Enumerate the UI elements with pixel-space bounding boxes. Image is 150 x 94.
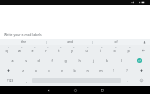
staticText: z — [22, 68, 24, 73]
button[interactable]: Recents — [89, 86, 116, 94]
staticText: p — [127, 48, 130, 53]
button[interactable]: of — [93, 39, 138, 45]
button[interactable]: g — [58, 55, 72, 65]
staticText: r — [45, 48, 47, 53]
button[interactable]: x — [29, 65, 42, 75]
button[interactable]: Emoji — [133, 75, 150, 86]
button[interactable]: Back — [35, 86, 62, 94]
staticText: i — [100, 48, 101, 53]
staticText: m — [99, 68, 103, 73]
staticText: . — [127, 78, 128, 83]
button[interactable]: 4 — [39, 45, 52, 55]
staticText: 6 — [73, 45, 75, 48]
staticText: e — [31, 48, 34, 53]
staticText: q — [5, 48, 8, 53]
staticText: of — [114, 40, 118, 44]
button[interactable]: the — [0, 39, 46, 45]
button[interactable]: m — [94, 65, 107, 75]
staticText: 9 — [115, 45, 117, 48]
staticText: a — [11, 58, 14, 63]
button[interactable]: Backspace — [135, 45, 150, 55]
button[interactable]: 7 — [79, 45, 93, 55]
button[interactable]: z — [16, 65, 29, 75]
staticText: 0 — [129, 45, 131, 48]
button[interactable]: Home — [62, 86, 89, 94]
button[interactable]: k — [100, 55, 114, 65]
staticText: t — [58, 48, 60, 53]
staticText: y — [71, 48, 73, 53]
button[interactable]: 2 — [13, 45, 26, 55]
button[interactable]: h — [72, 55, 86, 65]
staticText: b — [73, 68, 76, 73]
staticText: x — [35, 68, 37, 73]
staticText: n — [86, 68, 89, 73]
button[interactable]: Voice input — [138, 39, 150, 45]
staticText: 5 — [60, 45, 62, 48]
staticText: w — [18, 48, 21, 53]
staticText: h — [78, 58, 81, 63]
button[interactable]: and — [47, 39, 92, 45]
staticText: Write your e-mail labels — [4, 32, 42, 37]
button[interactable]: 6 — [65, 45, 79, 55]
staticText: 2 — [21, 45, 23, 48]
staticText: k — [106, 58, 108, 63]
button[interactable]: 1 — [0, 45, 13, 55]
button[interactable]: 3 — [26, 45, 39, 55]
button[interactable]: 8 — [93, 45, 107, 55]
staticText: 7 — [87, 45, 89, 48]
staticText: s — [25, 58, 27, 63]
button[interactable]: a — [6, 55, 19, 65]
button[interactable]: j — [86, 55, 100, 65]
button[interactable]: ?123 — [0, 75, 20, 86]
staticText: u — [85, 48, 88, 53]
staticText: 8 — [101, 45, 103, 48]
staticText: v — [61, 68, 63, 73]
button[interactable]: 9 — [107, 45, 121, 55]
staticText: l — [121, 58, 122, 63]
staticText: , — [26, 78, 27, 83]
button[interactable]: Shift — [0, 65, 16, 75]
staticText: 3 — [34, 45, 36, 48]
button[interactable]: n — [81, 65, 94, 75]
staticText: d — [37, 58, 40, 63]
staticText: g — [64, 58, 67, 63]
button[interactable]: 5 — [52, 45, 65, 55]
button[interactable]: d — [32, 55, 45, 65]
button[interactable]: v — [55, 65, 68, 75]
staticText: and — [67, 40, 73, 44]
button[interactable]: s — [19, 55, 32, 65]
staticText: ! — [113, 68, 114, 73]
button[interactable]: Enter — [128, 55, 150, 65]
button[interactable]: b — [68, 65, 81, 75]
staticText: j — [93, 58, 94, 63]
staticText: the — [21, 40, 26, 44]
button[interactable]: Shift — [133, 65, 150, 75]
button[interactable]: f — [45, 55, 58, 65]
staticText: c — [48, 68, 50, 73]
button[interactable]: l — [114, 55, 128, 65]
staticText: 4 — [47, 45, 49, 48]
staticText: ?123 — [7, 79, 14, 83]
button[interactable]: 0 — [121, 45, 135, 55]
button[interactable]: c — [42, 65, 55, 75]
staticText: f — [51, 58, 53, 63]
staticText: o — [113, 48, 116, 53]
button[interactable]: ? — [120, 65, 133, 75]
staticText: ? — [126, 68, 128, 73]
staticText: 1 — [8, 45, 10, 48]
button[interactable]: ! — [107, 65, 120, 75]
button[interactable]: , — [20, 75, 32, 86]
